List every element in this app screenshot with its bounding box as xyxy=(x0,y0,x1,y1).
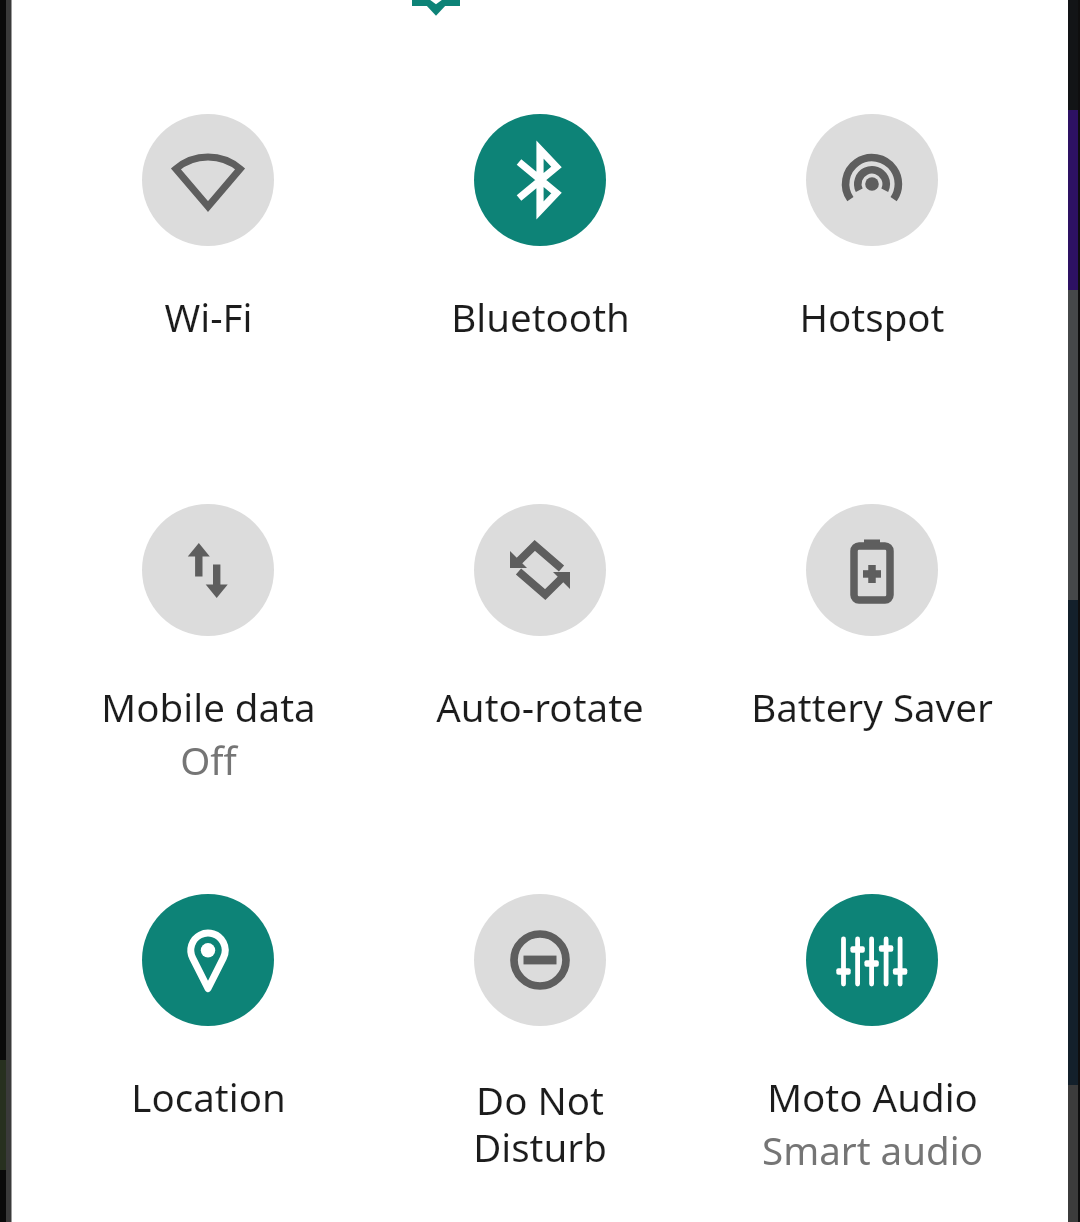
staticText: Mobile data xyxy=(101,681,316,733)
button[interactable] xyxy=(374,893,706,1143)
button[interactable] xyxy=(42,503,374,753)
staticText: Location xyxy=(131,1071,286,1123)
staticText: Hotspot xyxy=(799,291,945,343)
staticText: Bluetooth xyxy=(451,291,630,343)
button[interactable] xyxy=(374,113,706,363)
staticText: Smart audio xyxy=(762,1124,983,1176)
staticText: Moto Audio xyxy=(767,1071,978,1123)
staticText: Disturb xyxy=(473,1121,607,1173)
staticText: Battery Saver xyxy=(751,681,993,733)
staticText: Off xyxy=(180,734,237,786)
button[interactable] xyxy=(42,893,374,1143)
button[interactable] xyxy=(706,503,1038,753)
button[interactable] xyxy=(42,113,374,363)
staticText: Auto-rotate xyxy=(436,681,644,733)
staticText: Do Not xyxy=(476,1074,604,1126)
button[interactable] xyxy=(374,503,706,753)
staticText: Wi-Fi xyxy=(164,291,253,343)
button[interactable] xyxy=(706,113,1038,363)
button[interactable] xyxy=(706,893,1038,1143)
